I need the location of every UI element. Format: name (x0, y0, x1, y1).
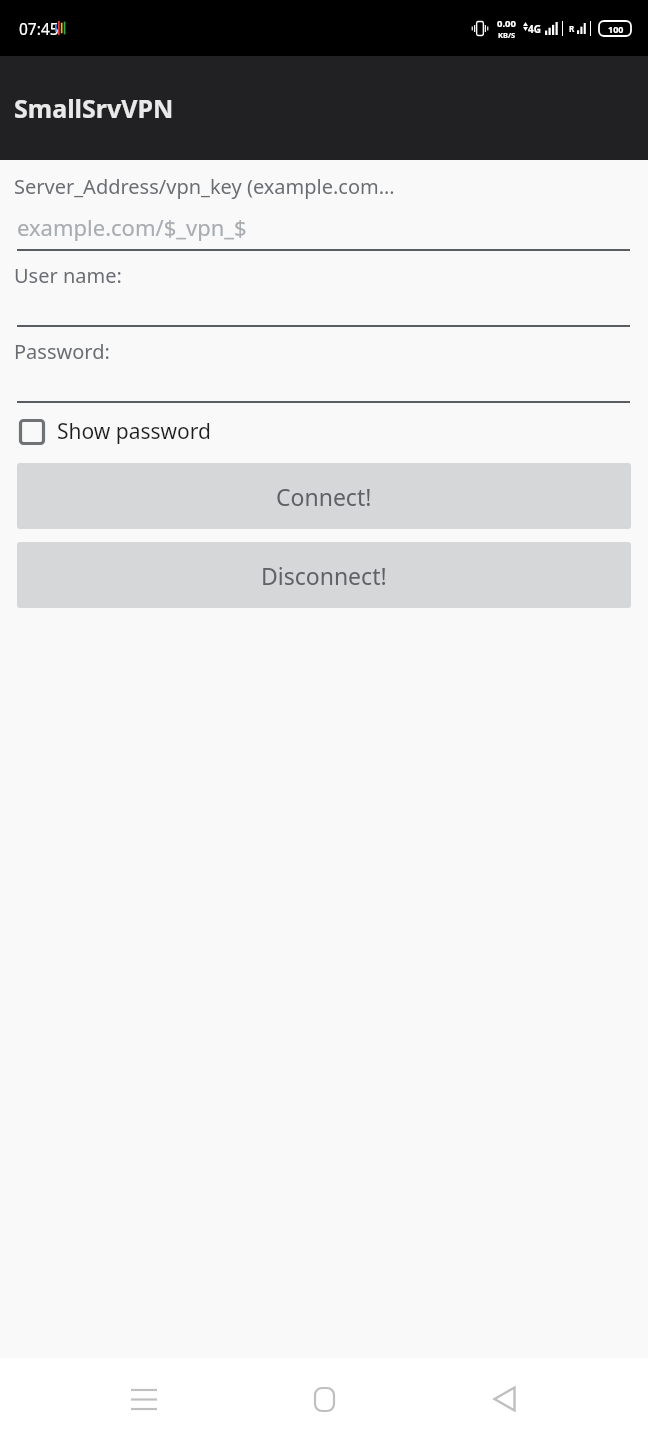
staticText: User name: (14, 262, 122, 289)
staticText: 07:45 (19, 18, 59, 39)
button[interactable]: Show password (17, 415, 213, 448)
staticText: example.com/$_vpn_$ (17, 212, 247, 242)
staticText: Show password (57, 417, 211, 446)
staticText: Connect! (276, 481, 372, 512)
button[interactable]: Connect! (17, 463, 631, 529)
staticText: 4G (528, 22, 541, 36)
button[interactable]: Disconnect! (17, 542, 631, 608)
button[interactable]: Recent apps (108, 1363, 180, 1435)
staticText: Server_Address/vpn_key (example.com… (14, 173, 395, 200)
staticText: 0.00 (497, 17, 516, 30)
button[interactable]: Back (468, 1363, 540, 1435)
button[interactable]: Home (288, 1363, 360, 1435)
staticText: Disconnect! (261, 560, 387, 591)
staticText: KB/S (498, 30, 516, 40)
staticText: Password: (14, 338, 110, 365)
staticText: SmallSrvVPN (14, 91, 174, 125)
staticText: R (569, 23, 575, 34)
staticText: 100 (608, 23, 624, 35)
